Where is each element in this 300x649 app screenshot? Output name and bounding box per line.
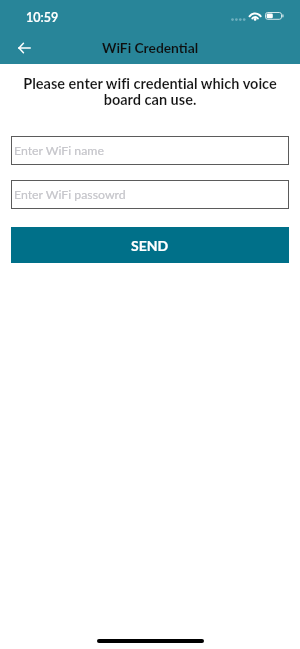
button[interactable]: SEND — [11, 227, 289, 263]
button[interactable]: Enter WiFi passowrd — [11, 180, 289, 209]
staticText: WiFi Credential — [102, 39, 199, 56]
staticText: Enter WiFi name — [14, 143, 104, 158]
staticText: Enter WiFi passowrd — [14, 187, 126, 202]
staticText: Please enter wifi credential which voice… — [11, 75, 289, 108]
staticText: 10:59 — [26, 10, 59, 25]
button[interactable]: Enter WiFi name — [11, 136, 289, 165]
staticText: SEND — [131, 237, 169, 254]
button[interactable]: Back — [8, 32, 40, 64]
